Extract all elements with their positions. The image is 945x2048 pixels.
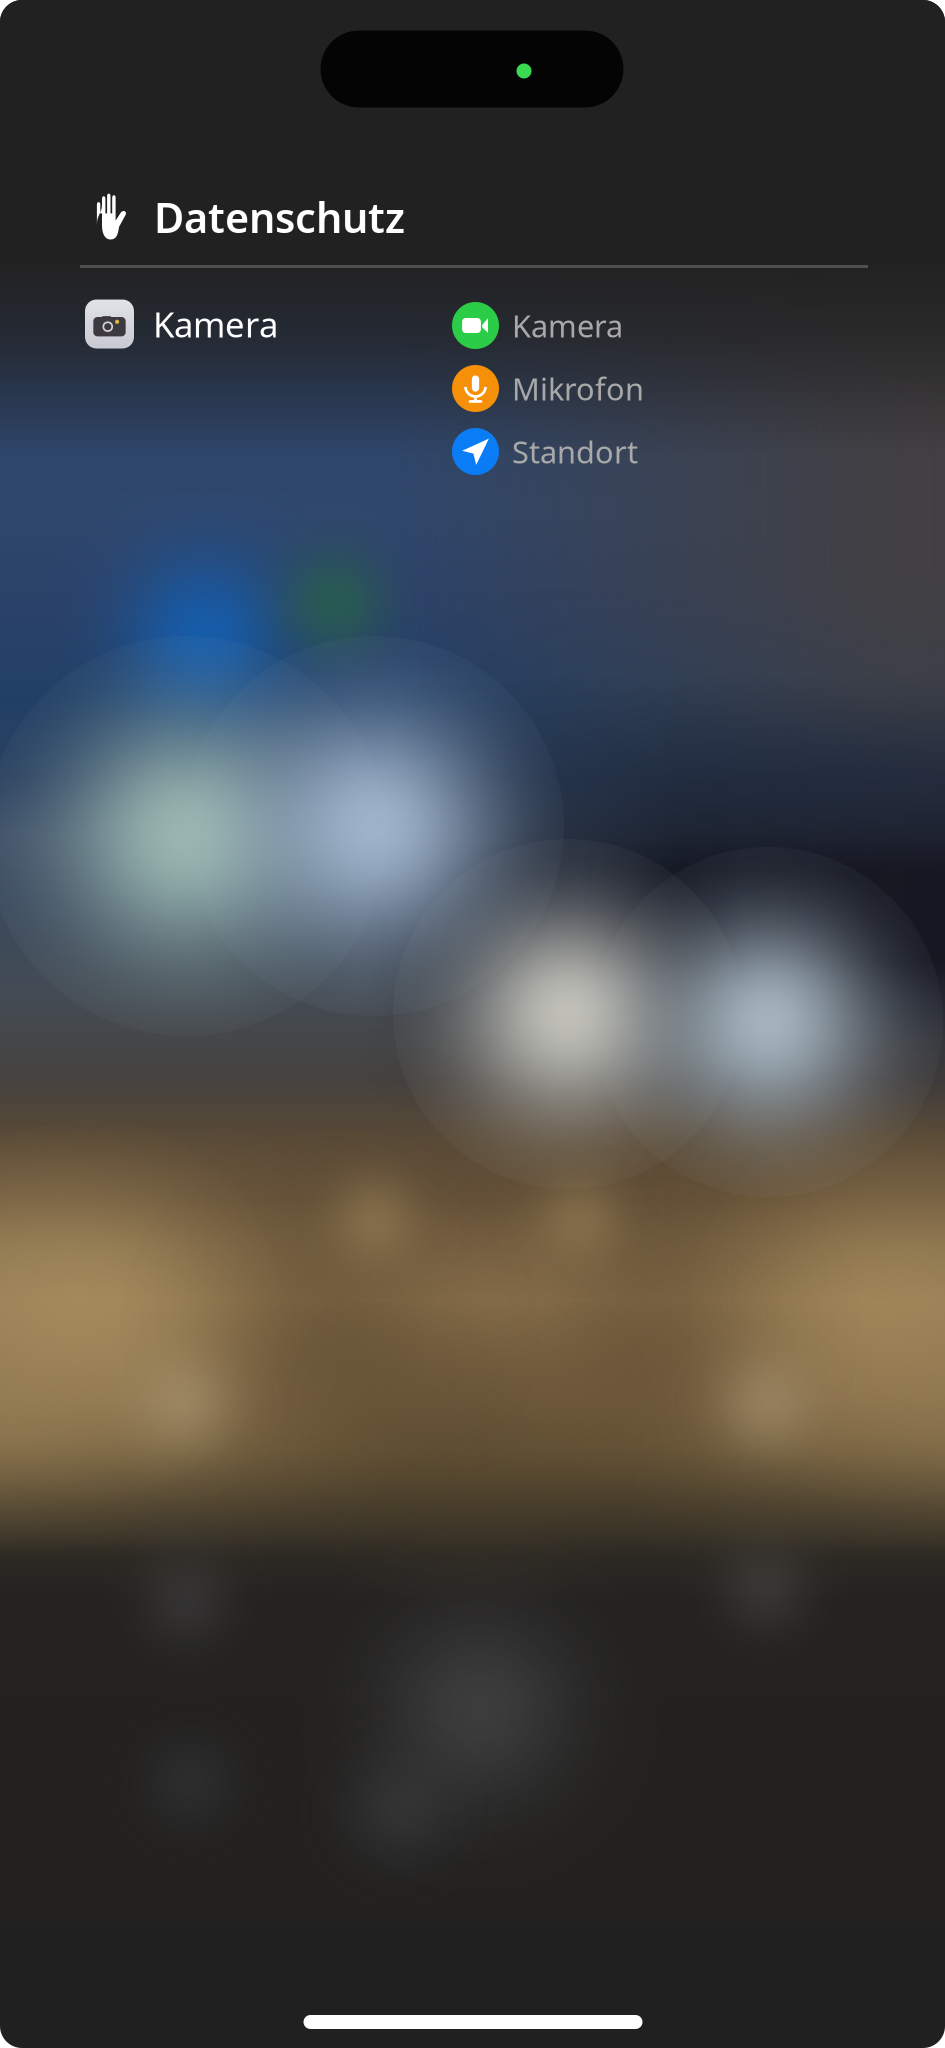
button[interactable]: Kamera	[85, 294, 385, 354]
staticText: Mikrofon	[512, 368, 644, 409]
staticText: Kamera	[153, 301, 278, 347]
button[interactable]: Standort	[452, 420, 792, 483]
button[interactable]: Kamera	[452, 294, 792, 357]
button[interactable]: Mikrofon	[452, 357, 792, 420]
staticText: Standort	[512, 431, 638, 472]
staticText: Kamera	[512, 305, 623, 346]
staticText: Datenschutz	[154, 190, 405, 244]
